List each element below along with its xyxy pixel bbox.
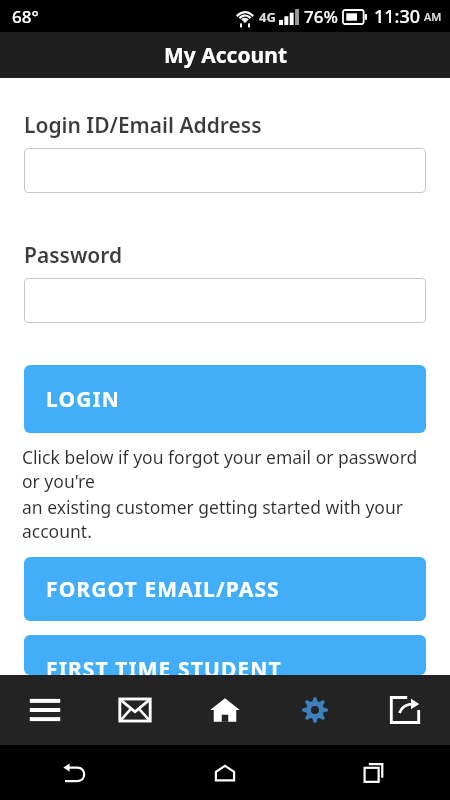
- button[interactable]: Back: [0, 745, 150, 800]
- staticText: Click below if you forgot your email or …: [22, 445, 428, 493]
- button[interactable]: [24, 278, 426, 323]
- staticText: FORGOT EMAIL/PASS: [46, 575, 280, 604]
- staticText: FIRST TIME STUDENT REGISTRATION: [46, 655, 282, 675]
- button[interactable]: Settings: [270, 675, 360, 745]
- button[interactable]: Mail: [90, 675, 180, 745]
- staticText: 76%: [304, 5, 338, 28]
- button[interactable]: [24, 148, 426, 193]
- staticText: an existing customer getting started wit…: [22, 495, 428, 543]
- staticText: 11:30: [374, 4, 421, 29]
- button[interactable]: Menu: [0, 675, 90, 745]
- staticText: 68°: [12, 5, 39, 28]
- button[interactable]: Share: [360, 675, 450, 745]
- staticText: My Account: [164, 41, 287, 70]
- button[interactable]: FORGOT EMAIL/PASS: [24, 557, 426, 621]
- staticText: Login ID/Email Address: [24, 111, 262, 140]
- staticText: 4G: [259, 8, 276, 26]
- button[interactable]: Home: [150, 745, 300, 800]
- button[interactable]: Recents: [300, 745, 450, 800]
- staticText: AM: [424, 9, 442, 24]
- button[interactable]: LOGIN: [24, 365, 426, 433]
- button[interactable]: FIRST TIME STUDENT REGISTRATION: [24, 635, 426, 675]
- button[interactable]: Home: [180, 675, 270, 745]
- staticText: LOGIN: [46, 385, 120, 414]
- staticText: Password: [24, 241, 123, 270]
